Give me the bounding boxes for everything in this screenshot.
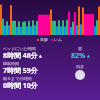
staticText: 覚醒 bbox=[40, 37, 48, 42]
staticText: ▲ bbox=[87, 54, 90, 58]
staticText: 0時間 10分 bbox=[3, 81, 38, 91]
staticText: ベッドにいた時間 bbox=[3, 46, 36, 51]
staticText: 7時間 59分 bbox=[3, 66, 38, 76]
staticText: 82% bbox=[71, 51, 86, 61]
staticText: 質 bbox=[78, 46, 82, 51]
staticText: 気分 bbox=[76, 64, 84, 69]
staticText: レム bbox=[54, 37, 63, 42]
staticText: 睡眠時間 bbox=[3, 61, 19, 66]
staticText: 眠るまでの時間 bbox=[3, 76, 32, 81]
staticText: 8時間 46分 bbox=[3, 51, 38, 61]
staticText: ▲ bbox=[39, 54, 42, 58]
